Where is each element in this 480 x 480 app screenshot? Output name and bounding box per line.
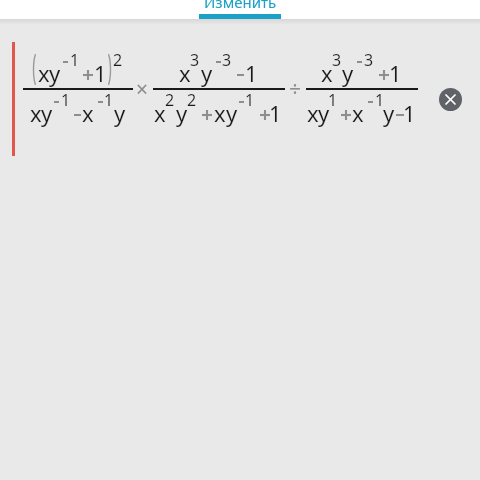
staticText: 1 (375, 89, 385, 111)
staticText: x (82, 98, 94, 128)
staticText: x (321, 58, 333, 88)
staticText: 3 (190, 49, 200, 71)
staticText: y (176, 98, 188, 128)
staticText: 1 (104, 89, 114, 111)
button[interactable]: Изменить (199, 0, 281, 19)
staticText: y (114, 98, 126, 128)
staticText: 1 (70, 49, 80, 71)
staticText: 3 (222, 49, 232, 71)
staticText: × (136, 75, 149, 104)
staticText: x (30, 98, 42, 128)
staticText: y (226, 98, 238, 128)
staticText: x (179, 58, 191, 88)
staticText: 1 (245, 89, 255, 111)
staticText: ÷ (289, 75, 302, 104)
staticText: y (41, 98, 53, 128)
staticText: 2 (113, 49, 123, 71)
staticText: 1 (328, 89, 338, 111)
staticText: y (318, 98, 330, 128)
button[interactable]: Close (439, 88, 462, 111)
staticText: 1 (61, 89, 71, 111)
staticText: x (154, 98, 166, 128)
staticText: Изменить (204, 0, 277, 11)
staticText: x (307, 98, 319, 128)
staticText: x (214, 98, 226, 128)
staticText: x (38, 58, 50, 88)
staticText: x (352, 98, 364, 128)
staticText: 1 (403, 98, 416, 128)
staticText: 1 (269, 98, 282, 128)
staticText: y (342, 58, 354, 88)
staticText: y (383, 98, 395, 128)
staticText: 3 (332, 49, 342, 71)
staticText: 1 (94, 58, 107, 88)
staticText: 2 (165, 89, 175, 111)
staticText: y (49, 58, 61, 88)
staticText: 1 (389, 58, 402, 88)
staticText: 3 (364, 49, 374, 71)
staticText: 2 (187, 89, 197, 111)
staticText: y (201, 58, 213, 88)
staticText: 1 (245, 58, 258, 88)
